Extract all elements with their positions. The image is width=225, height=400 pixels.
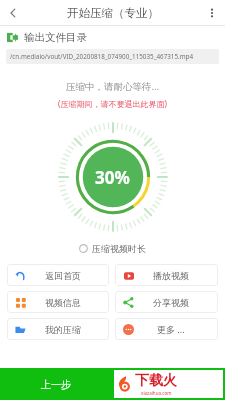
staticText: 开始压缩（专业） xyxy=(67,6,159,20)
staticText: (压缩期间，请不要退出此界面) xyxy=(58,98,167,109)
button[interactable]: 返回首页 xyxy=(7,264,109,286)
button[interactable]: Back xyxy=(0,0,26,26)
staticText: 播放视频 xyxy=(153,270,189,281)
button[interactable]: More options xyxy=(199,0,225,26)
staticText: 上一步 xyxy=(41,378,71,391)
staticText: 输出文件目录 xyxy=(24,31,87,44)
button[interactable]: 上一步 xyxy=(0,368,112,400)
button[interactable]: 播放视频 xyxy=(115,264,218,286)
staticText: 视频信息 xyxy=(45,297,81,308)
staticText: xiazaihuo.com xyxy=(141,390,172,396)
button[interactable]: 我的压缩 xyxy=(7,318,109,340)
staticText: /cn.mediaio/vout/VID_20200818_074900_115… xyxy=(10,52,194,61)
staticText: 压缩视频时长 xyxy=(92,243,146,254)
button[interactable]: 压缩视频时长 xyxy=(79,243,146,254)
button[interactable]: 输出文件目录 xyxy=(7,31,225,44)
staticText: 分享视频 xyxy=(153,297,189,308)
staticText: 我的压缩 xyxy=(45,324,81,335)
button[interactable]: 更多 ... xyxy=(115,318,218,340)
staticText: 返回首页 xyxy=(45,270,81,281)
button[interactable]: 分享视频 xyxy=(115,291,218,313)
button[interactable]: /cn.mediaio/vout/VID_20200818_074900_115… xyxy=(6,49,219,64)
staticText: 压缩中，请耐心等待... xyxy=(66,80,160,93)
staticText: 30% xyxy=(95,166,130,189)
button[interactable]: 视频信息 xyxy=(7,291,109,313)
staticText: 更多 ... xyxy=(157,323,185,335)
staticText: 下载火 xyxy=(135,372,177,390)
